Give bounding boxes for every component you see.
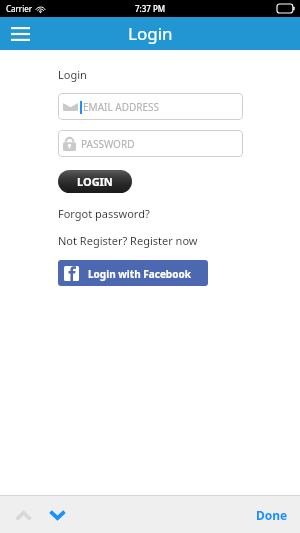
staticText: Carrier — [6, 3, 33, 14]
button[interactable]: Not Register? Register now — [58, 233, 198, 248]
staticText: PASSWORD — [81, 137, 135, 151]
button[interactable]: Forgot password? — [58, 206, 150, 221]
staticText: Login — [128, 22, 173, 45]
button[interactable]: Login with Facebook — [58, 260, 208, 286]
staticText: EMAIL ADDRESS — [83, 100, 159, 114]
button[interactable]: EMAIL ADDRESS — [58, 93, 243, 120]
staticText: 7:37 PM — [135, 3, 166, 14]
button[interactable]: Next field — [42, 500, 72, 530]
button[interactable]: Previous field — [8, 500, 38, 530]
button[interactable]: Done — [244, 501, 300, 529]
staticText: Login with Facebook — [88, 267, 191, 281]
button[interactable]: PASSWORD — [58, 130, 243, 157]
button[interactable]: Menu — [0, 17, 40, 50]
staticText: LOGIN — [77, 174, 113, 189]
staticText: Login — [58, 67, 87, 82]
staticText: Done — [256, 507, 288, 523]
button[interactable]: LOGIN — [58, 170, 132, 193]
